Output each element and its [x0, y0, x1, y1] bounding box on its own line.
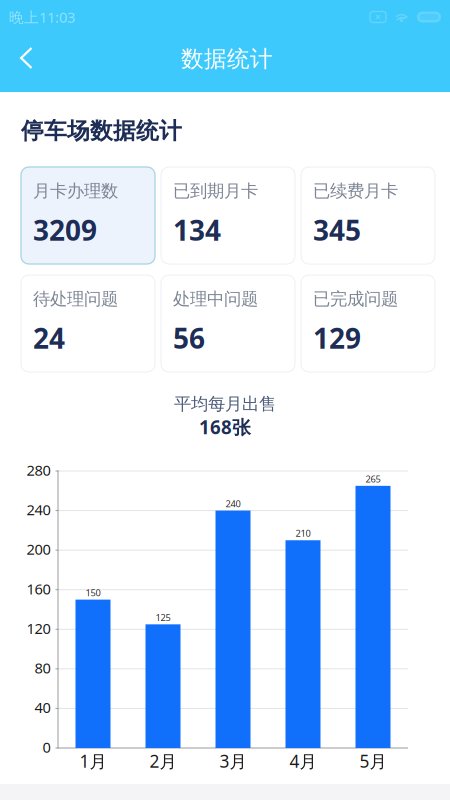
staticText: 200 — [26, 539, 50, 559]
staticText: 120 — [26, 618, 50, 638]
staticText: 0 — [42, 737, 50, 757]
staticText: 80 — [34, 658, 50, 678]
staticText: 1月 — [79, 749, 106, 772]
staticText: 240 — [225, 497, 240, 510]
staticText: 晚上11:03 — [9, 7, 75, 27]
button[interactable]: 处理中问题 — [161, 275, 295, 372]
staticText: 265 — [365, 473, 380, 485]
staticText: 160 — [26, 579, 50, 598]
staticText: 168张 — [199, 415, 251, 439]
staticText: 处理中问题 — [173, 288, 258, 310]
button[interactable]: 已完成问题 — [301, 275, 435, 372]
button[interactable]: 月卡办理数 — [21, 167, 155, 264]
staticText: 停车场数据统计 — [21, 117, 182, 145]
staticText: 2月 — [149, 749, 176, 772]
staticText: 134 — [173, 211, 221, 249]
staticText: 150 — [85, 586, 100, 599]
staticText: 40 — [34, 698, 50, 717]
staticText: 56 — [173, 319, 205, 357]
staticText: 数据统计 — [181, 45, 273, 73]
staticText: 24 — [33, 319, 65, 357]
button[interactable]: 已到期月卡 — [161, 167, 295, 264]
staticText: 129 — [313, 319, 361, 357]
staticText: 月卡办理数 — [33, 180, 118, 202]
staticText: 125 — [155, 611, 170, 623]
staticText: 3月 — [219, 749, 246, 772]
button[interactable]: 待处理问题 — [21, 275, 155, 372]
staticText: 已完成问题 — [313, 288, 398, 310]
staticText: 已到期月卡 — [173, 180, 258, 202]
staticText: 240 — [26, 500, 50, 519]
staticText: 平均每月出售 — [174, 393, 276, 415]
staticText: 4月 — [289, 749, 316, 772]
staticText: 210 — [295, 527, 310, 539]
staticText: 280 — [26, 460, 50, 480]
staticText: 3209 — [33, 211, 97, 249]
staticText: 345 — [313, 211, 361, 249]
button[interactable]: 已续费月卡 — [301, 167, 435, 264]
staticText: 5月 — [359, 749, 386, 772]
staticText: 已续费月卡 — [313, 180, 398, 202]
staticText: 待处理问题 — [33, 288, 118, 310]
button[interactable]: Back — [4, 36, 48, 80]
